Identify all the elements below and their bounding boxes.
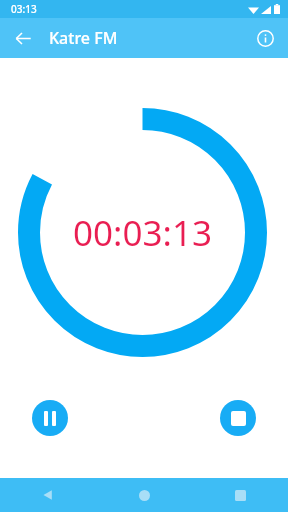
- staticText: 03:13: [11, 2, 37, 16]
- button[interactable]: Info: [249, 22, 281, 54]
- button[interactable]: Home: [96, 478, 192, 512]
- staticText: Katre FM: [49, 27, 118, 49]
- button[interactable]: Back: [6, 21, 40, 55]
- button[interactable]: Stop: [220, 400, 256, 436]
- button[interactable]: Recent apps: [192, 478, 288, 512]
- staticText: 00:03:13: [73, 209, 212, 257]
- button[interactable]: Pause: [32, 400, 68, 436]
- button[interactable]: Back: [0, 478, 96, 512]
